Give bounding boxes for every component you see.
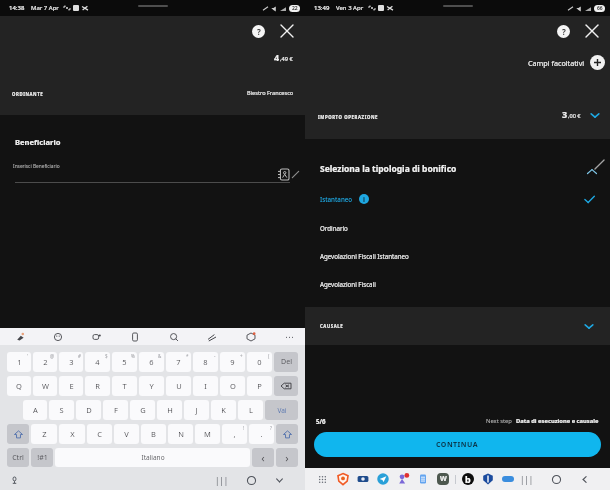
button[interactable]: Keyboard tool 0 [12,329,28,345]
staticText: Agevolazioni Fiscali [320,280,376,288]
button[interactable]: › [276,448,298,467]
button[interactable]: Keyboard tool 1 [50,329,66,345]
staticText: 14:38 [9,4,25,12]
button[interactable]: Close [582,21,602,41]
button[interactable]: Back [575,470,593,488]
button[interactable]: Recents [213,471,231,489]
button[interactable]: 0 [247,352,272,372]
button[interactable]: V [114,424,139,444]
button[interactable]: Keyboard tool 4 [166,329,182,345]
button[interactable]: L [238,400,263,420]
button[interactable]: B [141,424,166,444]
staticText: ' [27,353,29,359]
button[interactable]: Agevolazioni Fiscali Istantaneo [320,242,595,270]
staticText: , [233,429,236,439]
button[interactable]: Help [252,25,265,38]
button[interactable]: M [195,424,220,444]
button[interactable]: Close [277,21,297,41]
button[interactable]: D [76,400,101,420]
button[interactable]: Italiano [55,448,250,467]
button[interactable]: Ctrl [7,448,29,467]
button[interactable]: 2 [33,352,57,372]
staticText: F [114,405,118,415]
button[interactable]: Shift [276,424,298,444]
button[interactable]: U [166,376,191,396]
button[interactable]: P [247,376,272,396]
button[interactable]: Add optional fields [590,55,605,70]
button[interactable]: 1 [7,352,31,372]
button[interactable]: Keyboard tool 2 [89,329,105,345]
button[interactable]: Ordinario [320,214,595,242]
staticText: $ [105,353,108,359]
button[interactable]: Docs [416,472,430,486]
button[interactable]: Back [270,471,288,489]
button[interactable]: Mail [356,472,370,486]
button[interactable]: CONTINUA [314,432,601,457]
button[interactable]: , [222,424,247,444]
button[interactable]: Voice input [8,474,20,486]
button[interactable]: 9 [220,352,245,372]
button[interactable]: I [193,376,218,396]
staticText: ||| [215,475,229,486]
button[interactable]: Keyboard tool 6 [243,329,259,345]
button[interactable]: !#1 [31,448,53,467]
button[interactable]: Telegram [376,472,390,486]
button[interactable]: Agevolazioni Fiscali [320,270,595,298]
button[interactable]: CAUSALE [320,307,595,345]
button[interactable]: Bitwarden [461,472,475,486]
button[interactable]: . [249,424,274,444]
button[interactable]: N [168,424,193,444]
button[interactable]: Vai [265,400,298,420]
button[interactable]: K [211,400,236,420]
button[interactable]: J [184,400,209,420]
button[interactable]: Backspace [274,376,298,396]
button[interactable]: X [59,424,85,444]
button[interactable]: Keyboard tool 3 [127,329,143,345]
button[interactable]: A [23,400,47,420]
button[interactable]: Home [242,471,260,489]
button[interactable]: Contacts [276,167,290,181]
button[interactable]: 3 [59,352,83,372]
button[interactable]: R [85,376,110,396]
staticText: › [285,450,289,465]
button[interactable]: W [33,376,57,396]
button[interactable]: Chat [501,472,515,486]
button[interactable]: 7 [166,352,191,372]
button[interactable]: S [49,400,74,420]
button[interactable]: 4 [85,352,110,372]
button[interactable]: Keyboard tool 5 [204,329,220,345]
button[interactable]: Del [274,352,298,372]
button[interactable]: O [220,376,245,396]
button[interactable]: Messages [396,472,410,486]
staticText: % [131,353,135,359]
button[interactable]: Keyboard tool 7 [281,329,297,345]
staticText: 7 [176,357,181,367]
button[interactable]: ‹ [252,448,274,467]
button[interactable]: 8 [193,352,218,372]
button[interactable]: 5 [112,352,137,372]
button[interactable]: Y [139,376,164,396]
button[interactable]: Q [7,376,31,396]
button[interactable]: Apps [316,473,329,486]
staticText: ? [257,26,261,37]
staticText: & [158,353,162,359]
button[interactable]: Help [557,25,570,38]
button[interactable]: Recents [518,470,536,488]
staticText: Mar 7 Apr [31,4,59,12]
button[interactable]: Istantaneo [320,184,595,214]
button[interactable]: Brave [336,472,350,486]
button[interactable]: Security [481,472,495,486]
button[interactable]: 6 [139,352,164,372]
button[interactable]: F [103,400,128,420]
button[interactable]: C [87,424,112,444]
button[interactable]: Wikipedia [436,472,450,486]
button[interactable]: H [157,400,182,420]
button[interactable]: Shift [7,424,29,444]
button[interactable]: T [112,376,137,396]
staticText: X [70,429,75,439]
button[interactable]: Home [547,470,565,488]
button[interactable]: Edit [584,158,606,180]
button[interactable]: G [130,400,155,420]
button[interactable]: Z [31,424,57,444]
button[interactable]: E [59,376,83,396]
